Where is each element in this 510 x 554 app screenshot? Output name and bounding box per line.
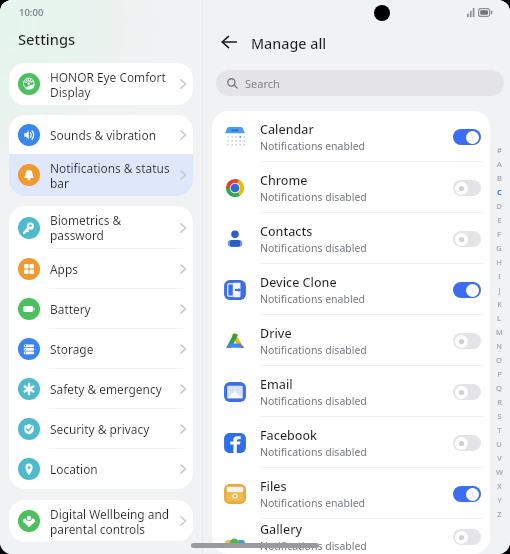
staticText: Notifications enabled (260, 496, 366, 510)
staticText: Notifications disabled (260, 343, 367, 357)
staticText: Calendar (260, 121, 314, 138)
button[interactable]: Facebook (212, 417, 490, 468)
button[interactable]: Toggle notifications (453, 486, 481, 502)
staticText: Q (496, 383, 502, 393)
staticText: X (497, 481, 502, 491)
button[interactable]: Files (212, 468, 490, 519)
staticText: U (496, 439, 502, 449)
button[interactable]: Calendar (212, 111, 490, 162)
button[interactable]: Back (215, 29, 243, 57)
staticText: Notifications enabled (260, 292, 366, 306)
button[interactable]: Digital Wellbeing and parental controls (9, 500, 193, 542)
button[interactable]: Toggle notifications (453, 231, 481, 247)
button[interactable]: Contacts (212, 213, 490, 264)
staticText: Digital Wellbeing and parental controls (50, 506, 176, 537)
staticText: Safety & emergency (50, 381, 176, 397)
staticText: # (497, 145, 502, 155)
staticText: E (497, 215, 502, 225)
button[interactable]: Email (212, 366, 490, 417)
button[interactable]: Drive (212, 315, 490, 366)
staticText: Notifications & status bar (50, 160, 176, 191)
staticText: Battery (50, 301, 176, 317)
staticText: Apps (50, 261, 176, 277)
staticText: T (497, 425, 502, 435)
button[interactable]: Storage (9, 329, 193, 369)
button[interactable]: Toggle notifications (453, 435, 481, 451)
button[interactable]: Toggle notifications (453, 333, 481, 349)
staticText: L (497, 313, 501, 323)
staticText: Drive (260, 325, 292, 342)
staticText: Notifications disabled (260, 539, 367, 553)
button[interactable]: Toggle notifications (453, 529, 481, 545)
staticText: S (497, 411, 502, 421)
button[interactable]: Safety & emergency (9, 369, 193, 409)
button[interactable]: Sounds & vibration (9, 115, 193, 154)
staticText: Notifications disabled (260, 394, 367, 408)
staticText: Security & privacy (50, 421, 176, 437)
button[interactable]: Chrome (212, 162, 490, 213)
staticText: Location (50, 461, 176, 477)
staticText: Contacts (260, 223, 313, 240)
staticText: P (497, 369, 502, 379)
button[interactable]: Toggle notifications (453, 180, 481, 196)
button[interactable]: Security & privacy (9, 409, 193, 449)
staticText: F (497, 229, 501, 239)
staticText: B (497, 173, 502, 183)
staticText: Notifications disabled (260, 190, 367, 204)
staticText: Device Clone (260, 274, 337, 291)
staticText: D (496, 201, 502, 211)
button[interactable]: Location (9, 449, 193, 489)
staticText: Files (260, 478, 287, 495)
button[interactable]: Search (216, 70, 504, 96)
staticText: C (497, 187, 502, 197)
button[interactable]: Device Clone (212, 264, 490, 315)
staticText: Facebook (260, 427, 318, 444)
staticText: 10:00 (19, 6, 44, 19)
button[interactable]: Notifications & status bar (9, 154, 193, 196)
button[interactable]: Gallery (212, 519, 490, 554)
staticText: Notifications disabled (260, 241, 367, 255)
staticText: V (497, 453, 502, 463)
button[interactable]: Toggle notifications (453, 384, 481, 400)
staticText: HONOR Eye Comfort Display (50, 69, 176, 100)
button[interactable]: Battery (9, 289, 193, 329)
staticText: Biometrics & password (50, 212, 176, 243)
staticText: R (497, 397, 502, 407)
staticText: A (497, 159, 502, 169)
staticText: Notifications enabled (260, 139, 366, 153)
staticText: Settings (18, 29, 76, 49)
staticText: Z (497, 509, 502, 519)
staticText: Notifications disabled (260, 445, 367, 459)
staticText: Y (497, 495, 502, 505)
staticText: H (496, 257, 502, 267)
staticText: Sounds & vibration (50, 127, 176, 143)
button[interactable]: Apps (9, 249, 193, 289)
staticText: Gallery (260, 521, 303, 538)
button[interactable]: Toggle notifications (453, 129, 481, 145)
staticText: J (498, 285, 501, 295)
staticText: I (498, 271, 501, 281)
staticText: Manage all (251, 34, 327, 53)
staticText: M (496, 327, 503, 337)
button[interactable]: Biometrics & password (9, 206, 193, 249)
button[interactable]: Toggle notifications (453, 282, 481, 298)
staticText: Storage (50, 341, 176, 357)
staticText: O (496, 355, 502, 365)
button[interactable]: HONOR Eye Comfort Display (9, 63, 193, 105)
staticText: Email (260, 376, 293, 393)
staticText: K (497, 299, 502, 309)
staticText: Search (245, 76, 280, 91)
staticText: G (496, 243, 502, 253)
staticText: W (496, 467, 503, 477)
staticText: N (496, 341, 502, 351)
staticText: Chrome (260, 172, 308, 189)
